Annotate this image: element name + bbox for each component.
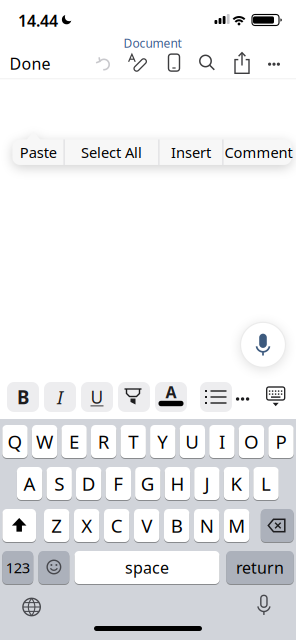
staticText: N xyxy=(200,513,214,538)
button[interactable] xyxy=(251,592,277,618)
staticText: G xyxy=(141,471,155,496)
button[interactable]: C xyxy=(104,509,129,543)
button[interactable] xyxy=(196,51,218,75)
staticText: Z xyxy=(51,513,62,538)
staticText: B xyxy=(171,513,183,538)
button[interactable] xyxy=(264,384,288,410)
button[interactable]: Paste xyxy=(13,140,64,165)
button[interactable]: N xyxy=(194,509,219,543)
staticText: I xyxy=(219,429,225,454)
staticText: Insert xyxy=(171,142,211,162)
button[interactable]: Insert xyxy=(159,140,222,165)
staticText: T xyxy=(128,429,138,454)
staticText: H xyxy=(170,471,184,496)
staticText: Y xyxy=(157,429,168,454)
button[interactable]: K xyxy=(224,467,249,501)
staticText: J xyxy=(204,471,209,496)
button[interactable]: U xyxy=(180,425,205,459)
button[interactable] xyxy=(91,51,115,75)
button[interactable]: Q xyxy=(2,425,28,459)
staticText: S xyxy=(54,471,64,496)
staticText: Document xyxy=(123,35,181,51)
staticText: O xyxy=(244,429,259,454)
staticText: E xyxy=(69,429,79,454)
button[interactable] xyxy=(231,50,253,76)
staticText: B xyxy=(17,385,29,409)
staticText: Select All xyxy=(81,142,142,162)
button[interactable] xyxy=(232,388,254,410)
staticText: D xyxy=(82,471,96,496)
button[interactable] xyxy=(125,50,151,76)
staticText: R xyxy=(98,429,110,454)
button[interactable] xyxy=(163,51,185,75)
button[interactable]: L xyxy=(253,467,279,501)
button[interactable]: Comment xyxy=(218,140,296,165)
staticText: Done xyxy=(9,53,50,74)
button[interactable]: B xyxy=(7,382,39,412)
button[interactable] xyxy=(2,509,36,543)
staticText: I xyxy=(57,385,63,409)
staticText: return xyxy=(236,557,284,578)
staticText: U xyxy=(90,385,103,408)
staticText: F xyxy=(113,471,123,496)
button[interactable] xyxy=(200,382,232,412)
button[interactable]: I xyxy=(209,425,235,459)
button[interactable]: B xyxy=(164,509,189,543)
button[interactable] xyxy=(118,382,150,412)
button[interactable]: O xyxy=(239,425,264,459)
staticText: V xyxy=(141,513,152,538)
button[interactable]: A xyxy=(17,467,42,501)
button[interactable]: U xyxy=(81,382,113,412)
button[interactable]: G xyxy=(135,467,160,501)
button[interactable]: Z xyxy=(44,509,69,543)
button[interactable]: S xyxy=(46,467,72,501)
button[interactable]: A xyxy=(155,382,187,412)
button[interactable]: return xyxy=(226,551,294,585)
button[interactable]: R xyxy=(91,425,116,459)
button[interactable]: I xyxy=(44,382,76,412)
button[interactable] xyxy=(240,322,285,367)
button[interactable]: V xyxy=(134,509,159,543)
button[interactable] xyxy=(261,509,294,543)
button[interactable]: Document xyxy=(120,36,184,50)
button[interactable]: P xyxy=(268,425,294,459)
staticText: X xyxy=(81,513,92,538)
button[interactable]: Done xyxy=(3,48,57,78)
button[interactable]: space xyxy=(74,551,219,585)
button[interactable]: M xyxy=(224,509,249,543)
button[interactable]: Select All xyxy=(64,140,158,165)
button[interactable] xyxy=(19,594,45,620)
staticText: W xyxy=(36,429,53,454)
staticText: P xyxy=(275,429,286,454)
staticText: 123 xyxy=(6,558,30,577)
button[interactable]: J xyxy=(194,467,220,501)
staticText: C xyxy=(111,513,123,538)
staticText: L xyxy=(261,471,271,496)
staticText: Comment xyxy=(224,142,292,162)
button[interactable]: D xyxy=(76,467,101,501)
staticText: space xyxy=(125,557,169,578)
button[interactable]: F xyxy=(106,467,131,501)
button[interactable]: X xyxy=(74,509,99,543)
button[interactable]: T xyxy=(120,425,146,459)
button[interactable] xyxy=(264,54,284,74)
button[interactable]: E xyxy=(61,425,87,459)
button[interactable]: W xyxy=(32,425,57,459)
staticText: Q xyxy=(7,429,22,454)
button[interactable]: 123 xyxy=(2,551,33,585)
button[interactable]: H xyxy=(165,467,190,501)
staticText: 14.44 xyxy=(18,10,58,31)
button[interactable]: Y xyxy=(150,425,175,459)
button[interactable] xyxy=(38,551,69,585)
staticText: A xyxy=(24,471,36,496)
staticText: K xyxy=(230,471,242,496)
staticText: U xyxy=(185,429,199,454)
staticText: A xyxy=(165,381,176,403)
staticText: M xyxy=(228,513,245,538)
staticText: Paste xyxy=(20,142,57,162)
